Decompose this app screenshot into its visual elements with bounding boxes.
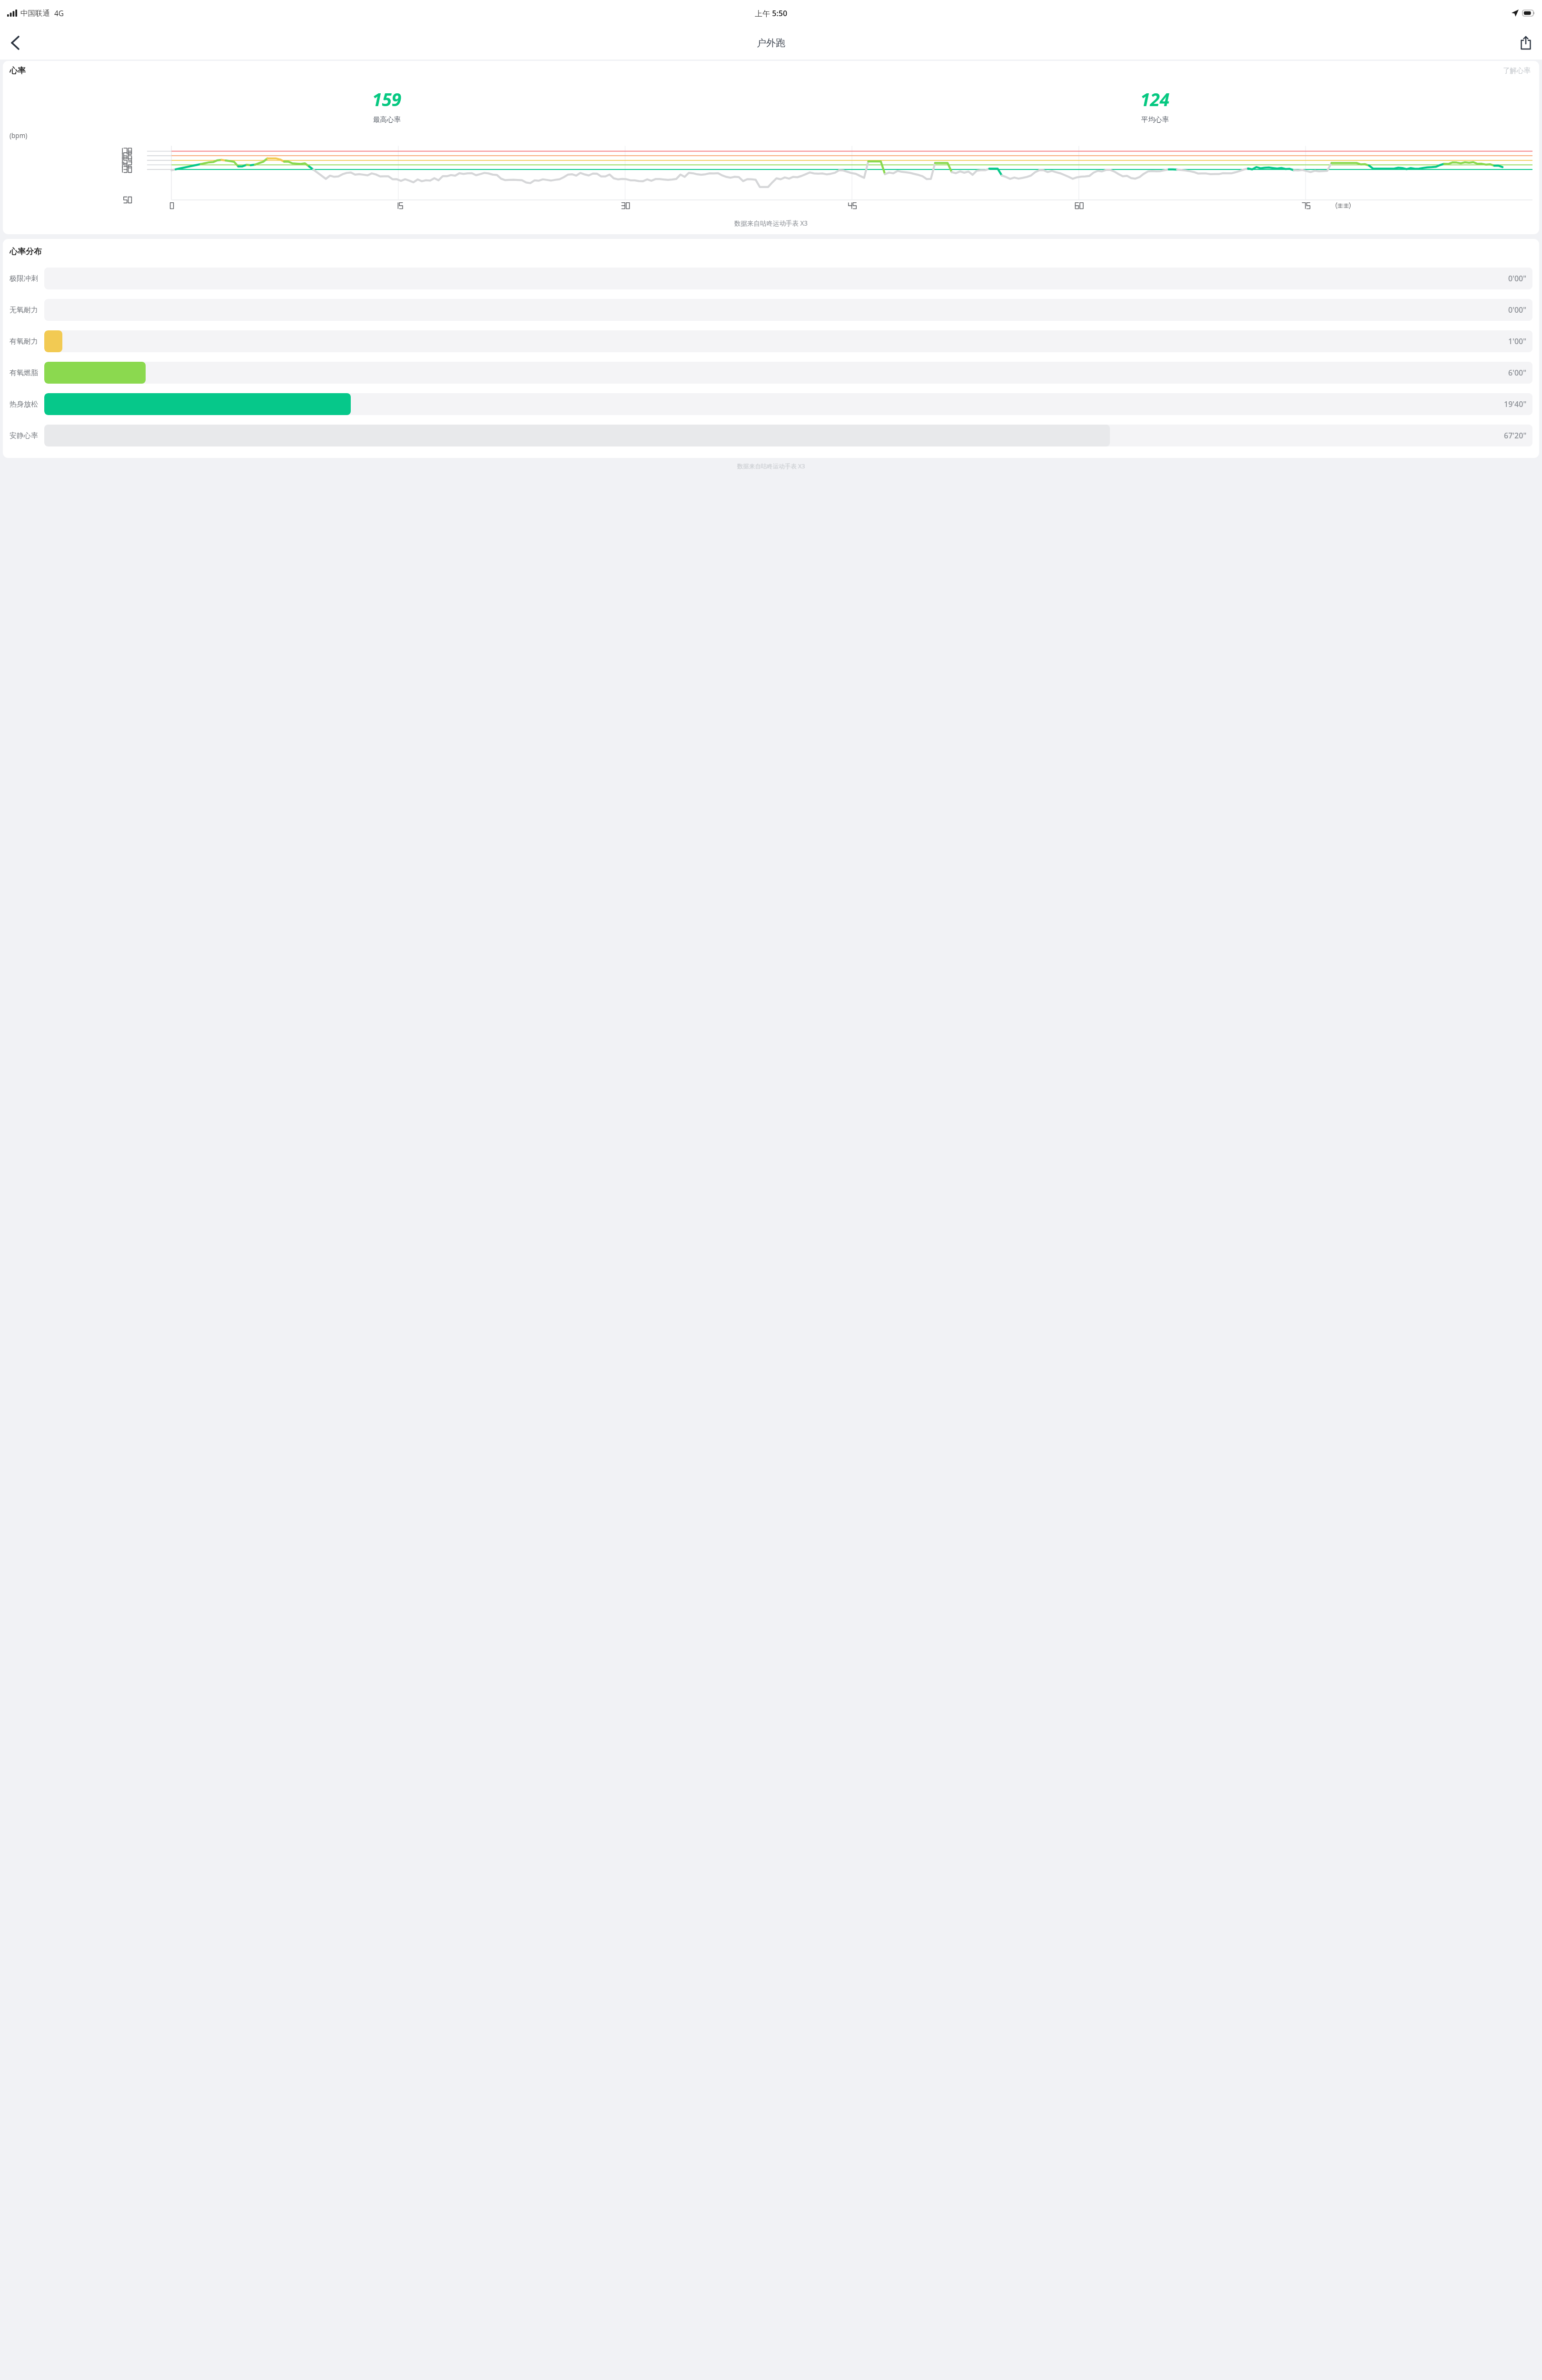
button[interactable]: Back xyxy=(2,30,29,56)
staticText: 心率分布 xyxy=(10,247,42,257)
staticText: 无氧耐力 xyxy=(10,306,38,315)
staticText: 最高心率 xyxy=(373,115,401,124)
button[interactable]: Share xyxy=(1512,30,1539,56)
staticText: 上午 5:50 xyxy=(755,8,788,19)
button[interactable]: 极限冲刺 xyxy=(3,263,1539,294)
staticText: 1'00" xyxy=(1508,336,1527,347)
button[interactable]: 安静心率 xyxy=(3,420,1539,451)
staticText: 0'00" xyxy=(1508,305,1527,315)
staticText: 0'00" xyxy=(1508,273,1527,284)
staticText: 平均心率 xyxy=(1141,115,1169,124)
staticText: 19'40" xyxy=(1504,399,1527,409)
staticText: 数据来自咕咚运动手表 X3 xyxy=(3,219,1539,228)
staticText: 中国联通 xyxy=(20,9,50,18)
staticText: 124 xyxy=(1140,87,1170,111)
staticText: 极限冲刺 xyxy=(10,274,38,283)
staticText: 心率 xyxy=(10,66,26,76)
staticText: 数据来自咕咚运动手表 X3 xyxy=(0,462,1542,470)
staticText: 了解心率 xyxy=(1503,66,1531,75)
button[interactable]: 热身放松 xyxy=(3,388,1539,420)
button[interactable]: 无氧耐力 xyxy=(3,294,1539,326)
staticText: 159 xyxy=(372,87,402,111)
staticText: 6'00" xyxy=(1508,367,1527,378)
button[interactable]: 有氧耐力 xyxy=(3,326,1539,357)
staticText: 热身放松 xyxy=(10,400,38,409)
staticText: 有氧耐力 xyxy=(10,337,38,346)
staticText: 67'20" xyxy=(1504,430,1527,441)
staticText: 安静心率 xyxy=(10,431,38,440)
staticText: (bpm) xyxy=(10,131,28,140)
staticText: 有氧燃脂 xyxy=(10,368,38,377)
button[interactable]: 了解心率 xyxy=(1501,64,1532,77)
staticText: 4G xyxy=(54,8,64,18)
staticText: 户外跑 xyxy=(757,37,785,49)
button[interactable]: 有氧燃脂 xyxy=(3,357,1539,388)
